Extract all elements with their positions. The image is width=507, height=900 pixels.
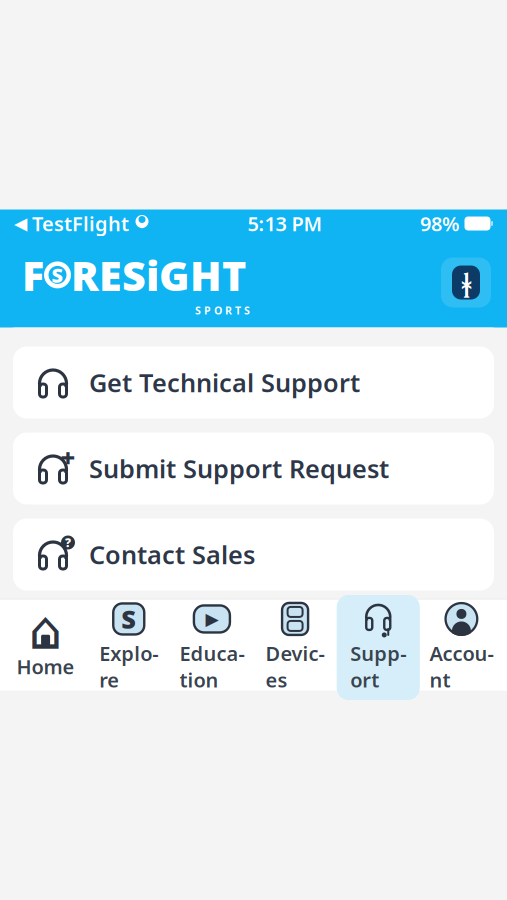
staticText: 98% — [420, 210, 460, 237]
staticText: Devices — [266, 640, 325, 693]
button[interactable]: ⌂ — [4, 608, 87, 687]
staticText: Home — [17, 653, 75, 680]
staticText: RESiGHT — [71, 247, 246, 302]
button[interactable]: Devices — [253, 595, 337, 700]
staticText: ▶ — [205, 609, 218, 629]
staticText: F — [22, 247, 44, 302]
staticText: 5:13 PM — [247, 210, 322, 237]
staticText: Get Technical Support — [89, 366, 360, 399]
button[interactable]: S — [87, 595, 170, 700]
staticText: Contact Sales — [89, 538, 255, 571]
staticText: Education — [179, 640, 244, 693]
button[interactable]: + — [13, 432, 494, 504]
button[interactable]: ▶ — [170, 595, 253, 700]
button[interactable]: Get Technical Support — [13, 346, 494, 418]
button[interactable]: ? — [13, 518, 494, 590]
staticText: Submit Support Request — [89, 452, 389, 485]
staticText: TestFlight — [32, 210, 129, 237]
staticText: ? — [65, 534, 71, 550]
staticText: ◀ — [14, 214, 27, 233]
staticText: Account — [429, 640, 493, 693]
staticText: ᚼ — [461, 266, 471, 299]
staticText: Support — [350, 640, 406, 693]
button[interactable]: Bluetooth — [441, 257, 491, 307]
staticText: Explore — [99, 640, 158, 693]
staticText: S — [51, 262, 63, 288]
staticText: S P O R T S — [195, 303, 250, 318]
staticText: + — [60, 441, 75, 474]
staticText: S — [121, 602, 136, 636]
button[interactable]: Account — [420, 595, 503, 700]
button[interactable]: Support — [337, 595, 420, 700]
staticText: ⌂ — [29, 600, 63, 660]
